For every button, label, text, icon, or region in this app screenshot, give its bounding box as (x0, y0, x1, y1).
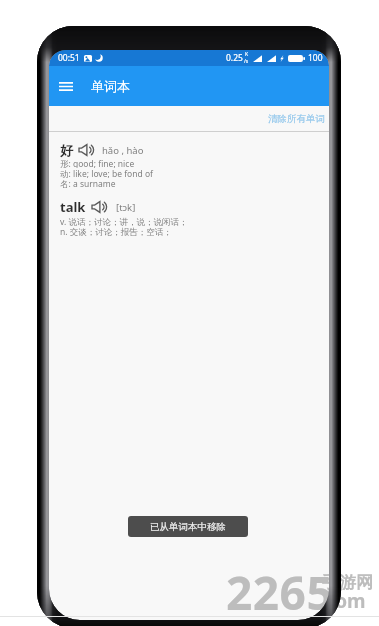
staticText: 动: like; love; be fond of (60, 168, 154, 178)
staticText: 00:51 (58, 52, 80, 64)
staticText: 单词本 (91, 78, 130, 94)
button[interactable]: 已从单词本中移除 (128, 516, 248, 537)
staticText: 已从单词本中移除 (150, 521, 226, 533)
staticText: 名: a surname (60, 178, 116, 188)
staticText: K (245, 51, 249, 58)
staticText: 形: good; fine; nice (60, 158, 135, 168)
staticText: talk (60, 198, 86, 216)
staticText: 2265 (226, 561, 334, 624)
staticText: 好 (60, 142, 73, 158)
staticText: /s (244, 58, 249, 65)
button[interactable]: Play pronunciation (78, 143, 97, 157)
staticText: [tɔk] (116, 201, 136, 214)
staticText: 手游网 (322, 572, 373, 593)
button[interactable]: 清除所有单词 (268, 113, 329, 125)
staticText: 0.25 (226, 52, 243, 64)
staticText: hǎo , hào (102, 144, 144, 157)
staticText: v. 说话；讨论；讲，说；说闲话； (60, 216, 188, 226)
staticText: n. 交谈；讨论；报告；空话； (60, 226, 172, 236)
button[interactable]: Play pronunciation (91, 200, 110, 214)
staticText: 100 (308, 52, 323, 64)
staticText: .com (320, 588, 366, 614)
button[interactable]: Open navigation menu (51, 71, 81, 101)
